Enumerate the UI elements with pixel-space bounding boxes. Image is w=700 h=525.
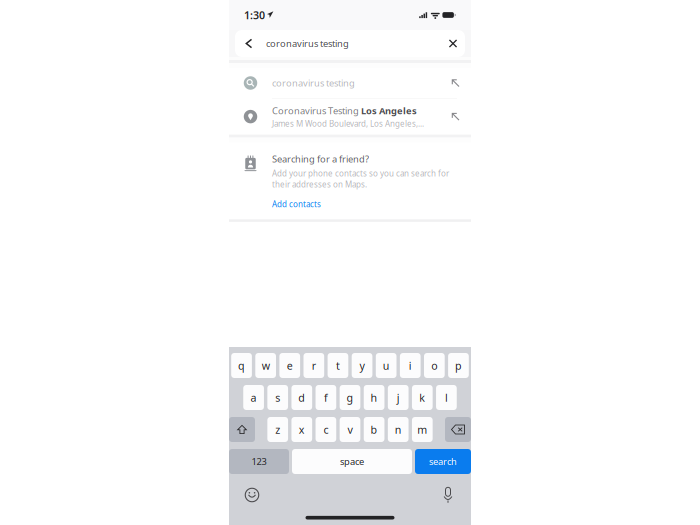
staticText: q xyxy=(238,358,245,373)
button[interactable]: Add contacts xyxy=(272,190,321,210)
button[interactable]: Back xyxy=(235,30,263,57)
button[interactable]: h xyxy=(364,385,384,410)
button[interactable]: coronavirus testing xyxy=(229,68,471,98)
staticText: j xyxy=(397,390,400,405)
button[interactable]: search xyxy=(415,449,471,474)
button[interactable]: x xyxy=(291,417,312,442)
staticText: u xyxy=(383,358,390,373)
button[interactable]: g xyxy=(340,385,360,410)
staticText: coronavirus testing xyxy=(266,37,349,50)
staticText: 1:30 xyxy=(244,8,265,22)
button[interactable]: w xyxy=(255,353,276,378)
button[interactable]: b xyxy=(364,417,384,442)
staticText: coronavirus testing xyxy=(272,77,355,89)
button[interactable]: Clear xyxy=(441,30,465,57)
staticText: y xyxy=(360,358,365,373)
button[interactable]: f xyxy=(316,385,336,410)
button[interactable]: n xyxy=(388,417,409,442)
button[interactable]: Shift xyxy=(229,417,255,442)
staticText: space xyxy=(340,455,364,468)
staticText: b xyxy=(371,422,378,437)
button[interactable]: Emoji keyboard xyxy=(241,485,263,505)
button[interactable]: 123 xyxy=(229,449,289,474)
button[interactable]: p xyxy=(448,353,469,378)
button[interactable]: i xyxy=(400,353,421,378)
staticText: k xyxy=(419,390,425,405)
staticText: n xyxy=(395,422,402,437)
staticText: x xyxy=(299,422,305,437)
staticText: v xyxy=(347,422,352,437)
staticText: o xyxy=(431,358,437,373)
button[interactable]: o xyxy=(424,353,445,378)
staticText: d xyxy=(298,390,305,405)
staticText: Coronavirus Testing xyxy=(272,104,361,117)
button[interactable]: j xyxy=(388,385,409,410)
button[interactable]: Dictation xyxy=(437,485,459,505)
button[interactable]: c xyxy=(316,417,336,442)
button[interactable]: Delete xyxy=(445,417,471,442)
staticText: l xyxy=(445,390,448,405)
staticText: r xyxy=(312,358,316,373)
button[interactable]: s xyxy=(267,385,288,410)
button[interactable]: m xyxy=(412,417,433,442)
staticText: i xyxy=(409,358,412,373)
button[interactable]: r xyxy=(303,353,324,378)
staticText: h xyxy=(371,390,378,405)
staticText: e xyxy=(287,358,293,373)
staticText: Searching for a friend? xyxy=(272,153,369,165)
button[interactable]: Coronavirus Testing xyxy=(229,99,471,135)
staticText: f xyxy=(324,390,328,405)
button[interactable]: k xyxy=(412,385,433,410)
button[interactable]: d xyxy=(291,385,312,410)
button[interactable]: space xyxy=(292,449,412,474)
staticText: their addresses on Maps. xyxy=(272,179,367,190)
button[interactable]: q xyxy=(231,353,252,378)
staticText: Los Angeles xyxy=(361,104,417,117)
button[interactable]: v xyxy=(340,417,360,442)
staticText: 123 xyxy=(251,455,266,468)
staticText: c xyxy=(323,422,328,437)
staticText: search xyxy=(429,455,457,468)
staticText: w xyxy=(262,358,270,373)
button[interactable]: t xyxy=(328,353,348,378)
button[interactable]: e xyxy=(279,353,300,378)
staticText: t xyxy=(336,358,340,373)
staticText: m xyxy=(417,422,427,437)
button[interactable]: a xyxy=(243,385,264,410)
button[interactable]: z xyxy=(267,417,288,442)
button[interactable]: u xyxy=(376,353,396,378)
staticText: a xyxy=(251,390,257,405)
button[interactable]: y xyxy=(352,353,372,378)
staticText: g xyxy=(346,390,353,405)
staticText: p xyxy=(455,358,462,373)
button[interactable]: l xyxy=(436,385,457,410)
staticText: Add your phone contacts so you can searc… xyxy=(272,168,449,179)
staticText: James M Wood Boulevard, Los Angeles,... xyxy=(272,118,424,129)
staticText: z xyxy=(275,422,280,437)
staticText: Add contacts xyxy=(272,199,321,209)
staticText: s xyxy=(275,390,280,405)
